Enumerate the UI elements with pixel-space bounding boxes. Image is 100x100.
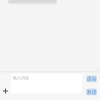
button[interactable]: 发送 [86, 88, 97, 95]
staticText: 语音 [86, 76, 96, 82]
staticText: 输入消息 [13, 75, 29, 80]
button[interactable]: 语音 [86, 75, 97, 82]
button[interactable]: Add attachment [0, 73, 11, 93]
staticText: 发送 [86, 89, 96, 95]
button[interactable]: 输入消息 [11, 73, 82, 93]
